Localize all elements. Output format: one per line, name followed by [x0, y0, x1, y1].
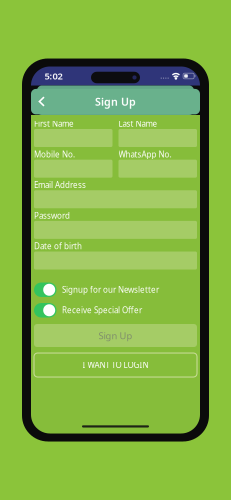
- staticText: Mobile No.: [34, 149, 75, 160]
- button[interactable]: Back: [33, 91, 51, 113]
- staticText: I WANT TO LOGIN: [82, 360, 148, 370]
- button[interactable]: Signup for our Newsletter: [34, 282, 197, 297]
- staticText: Email Address: [34, 180, 86, 190]
- button[interactable]: Receive Special Offer: [34, 303, 197, 317]
- staticText: Password: [34, 210, 70, 221]
- staticText: Sign Up: [98, 329, 132, 342]
- staticText: Receive Special Offer: [62, 305, 142, 316]
- staticText: WhatsApp No.: [118, 149, 171, 160]
- button[interactable]: I WANT TO LOGIN: [34, 353, 197, 377]
- staticText: First Name: [34, 118, 74, 129]
- staticText: Sign Up: [95, 95, 136, 109]
- staticText: Signup for our Newsletter: [62, 284, 159, 295]
- staticText: Last Name: [118, 118, 157, 129]
- button[interactable]: Sign Up: [34, 324, 197, 347]
- staticText: Date of birth: [34, 241, 82, 251]
- staticText: 5:02: [44, 70, 62, 82]
